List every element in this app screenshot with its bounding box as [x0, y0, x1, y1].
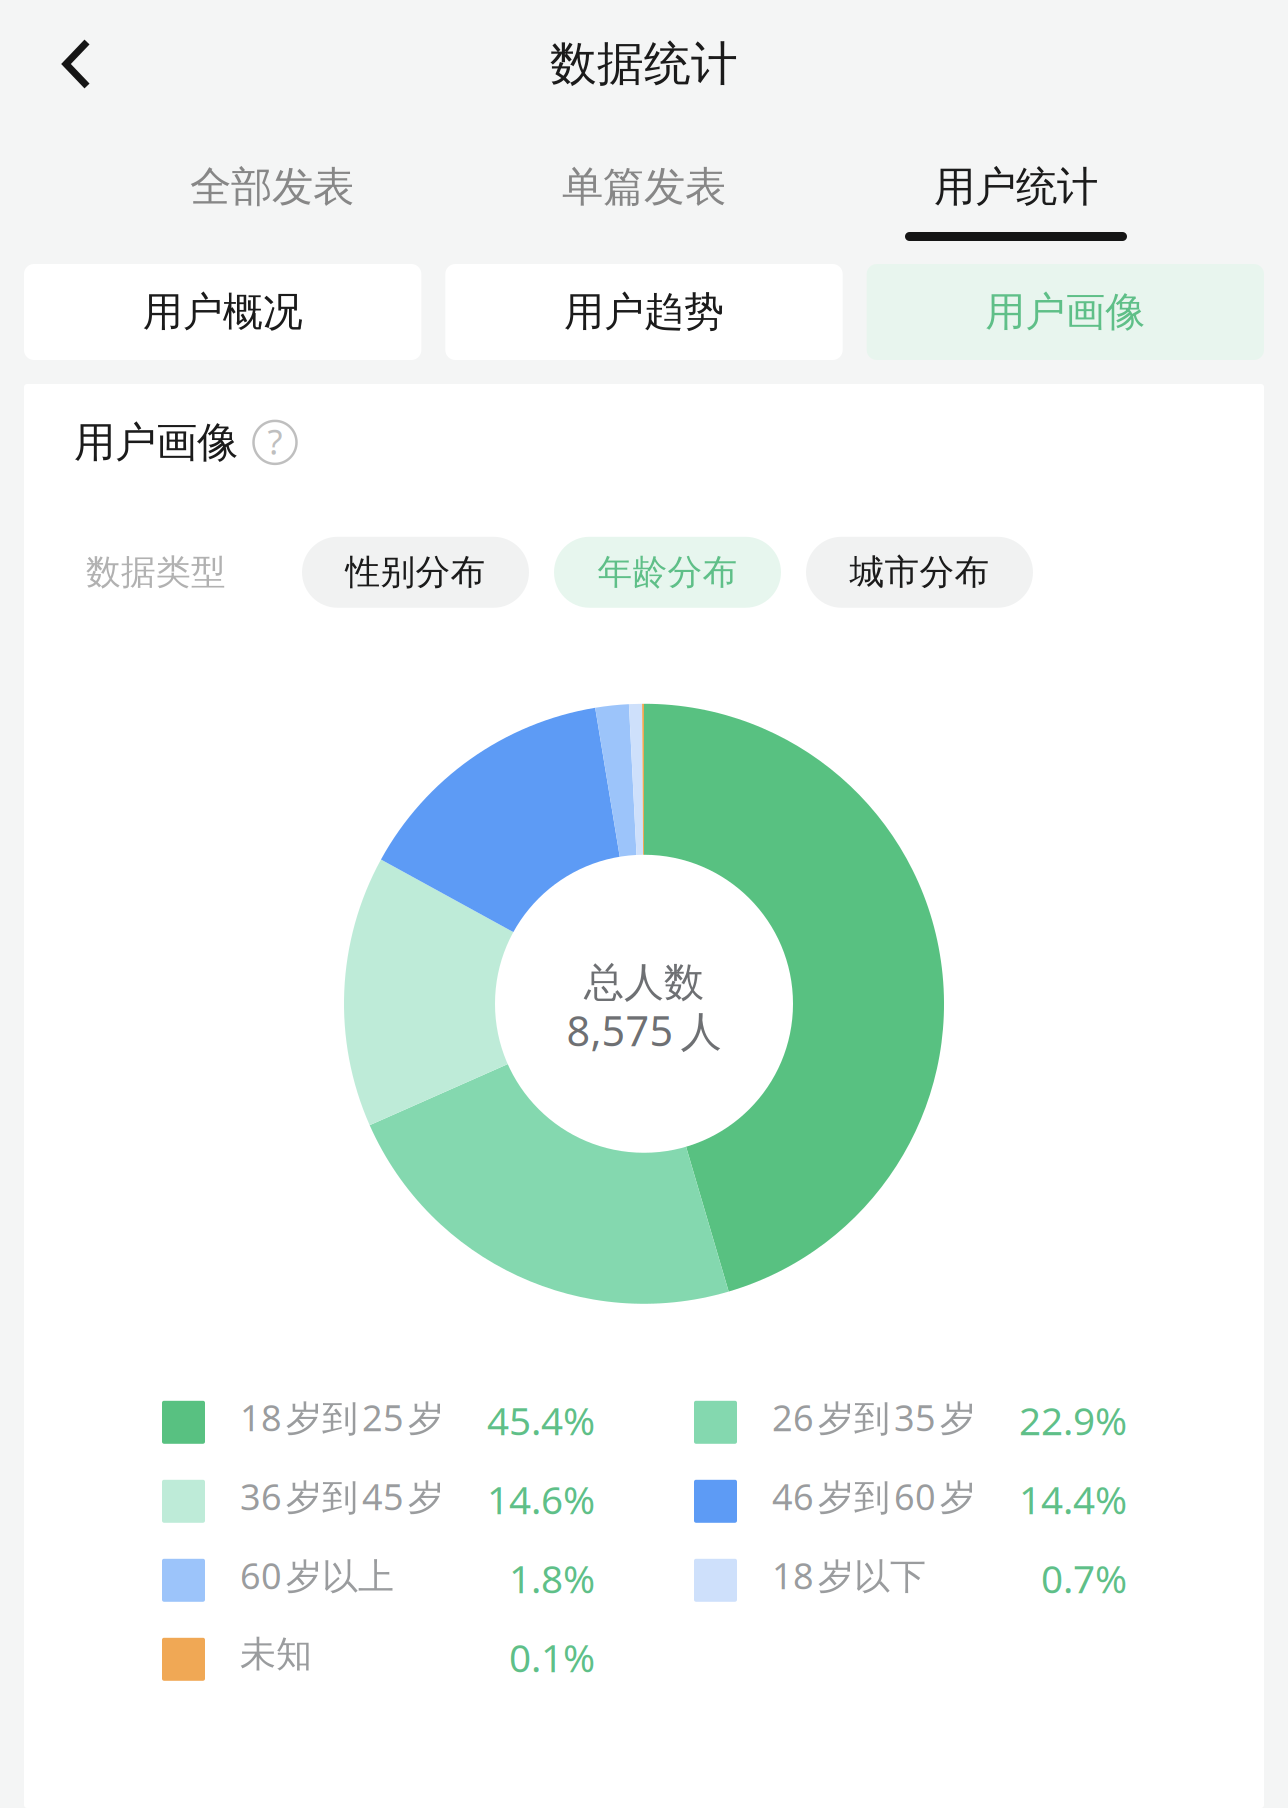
button[interactable]: 用户统计 [830, 128, 1202, 257]
staticText: 45.4% [487, 1395, 595, 1446]
button[interactable]: 单篇发表 [458, 128, 830, 257]
staticText: 1.8% [509, 1553, 595, 1604]
staticText: 用户画像 [985, 287, 1145, 336]
staticText: 单篇发表 [562, 162, 726, 212]
staticText: 城市分布 [849, 551, 989, 594]
staticText: 数据类型 [86, 551, 226, 594]
staticText: 全部发表 [190, 162, 354, 212]
button[interactable]: 用户概况 [24, 264, 421, 360]
staticText: 性别分布 [345, 551, 485, 594]
staticText: 18 岁以下 [772, 1551, 926, 1599]
staticText: 46 岁到 60 岁 [772, 1472, 976, 1520]
staticText: 0.7% [1041, 1553, 1127, 1604]
staticText: 22.9% [1019, 1395, 1127, 1446]
staticText: 未知 [240, 1632, 312, 1676]
staticText: 用户画像 [74, 417, 238, 468]
button[interactable]: 用户画像 [867, 264, 1264, 360]
staticText: 18 岁到 25 岁 [240, 1393, 444, 1441]
button[interactable]: 性别分布 [302, 537, 529, 608]
staticText: 用户统计 [934, 162, 1098, 212]
staticText: ? [267, 418, 282, 464]
staticText: 14.4% [1019, 1474, 1127, 1525]
staticText: 14.6% [487, 1474, 595, 1525]
button[interactable]: 城市分布 [806, 537, 1033, 608]
button[interactable]: 全部发表 [86, 128, 458, 257]
staticText: 36 岁到 45 岁 [240, 1472, 444, 1520]
staticText: 26 岁到 35 岁 [772, 1393, 976, 1441]
button[interactable]: 年龄分布 [554, 537, 781, 608]
staticText: 总人数 [584, 958, 704, 1007]
staticText: 用户趋势 [564, 287, 724, 336]
button[interactable]: Help [252, 419, 298, 465]
staticText: 0.1% [509, 1632, 595, 1683]
staticText: 60 岁以上 [240, 1551, 394, 1599]
staticText: 年龄分布 [597, 551, 737, 594]
button[interactable]: Back [0, 0, 150, 128]
button[interactable]: 用户趋势 [445, 264, 843, 360]
staticText: 数据统计 [550, 35, 738, 93]
staticText: 用户概况 [143, 287, 303, 336]
staticText: 8,575 人 [566, 1003, 721, 1058]
